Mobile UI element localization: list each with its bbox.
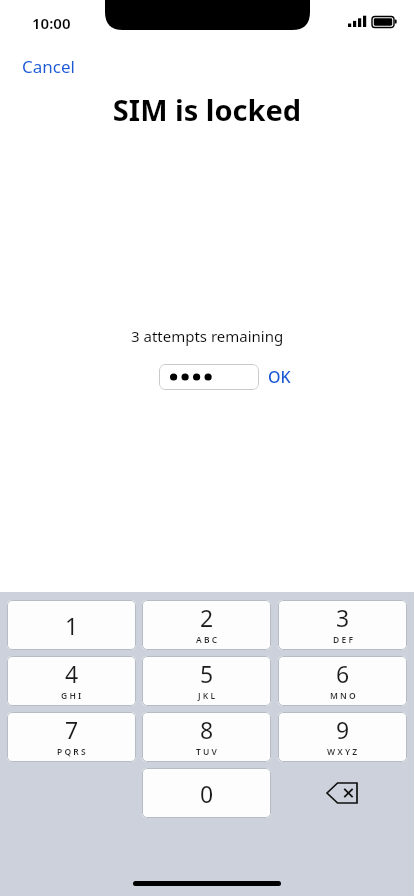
staticText: 6 xyxy=(336,658,350,689)
staticText: 1 xyxy=(65,610,79,641)
staticText: SIM is locked xyxy=(0,90,414,129)
staticText: J K L xyxy=(198,690,216,702)
button[interactable]: Cancel xyxy=(14,50,83,83)
staticText: M N O xyxy=(330,690,356,702)
button[interactable]: Delete xyxy=(278,768,407,818)
staticText: 8 xyxy=(200,714,214,745)
button[interactable]: 0 xyxy=(142,768,271,818)
staticText: Cancel xyxy=(22,55,75,78)
staticText: 2 xyxy=(200,602,214,633)
staticText: 0 xyxy=(200,778,214,809)
staticText: 10:00 xyxy=(32,13,71,33)
staticText: D E F xyxy=(333,634,353,646)
button[interactable]: OK xyxy=(259,362,300,392)
button[interactable]: 1 xyxy=(7,600,136,650)
button[interactable]: 3 xyxy=(278,600,407,650)
staticText: G H I xyxy=(61,690,82,702)
staticText: 7 xyxy=(65,714,79,745)
staticText: 3 xyxy=(336,602,350,633)
button[interactable]: 4 xyxy=(7,656,136,706)
button[interactable]: 6 xyxy=(278,656,407,706)
button[interactable]: 9 xyxy=(278,712,407,762)
button[interactable]: 5 xyxy=(142,656,271,706)
staticText: W X Y Z xyxy=(327,746,358,758)
staticText: OK xyxy=(268,366,291,388)
staticText: P Q R S xyxy=(57,746,86,758)
staticText: A B C xyxy=(196,634,218,646)
staticText: 5 xyxy=(200,658,214,689)
button[interactable]: 7 xyxy=(7,712,136,762)
staticText: 4 xyxy=(65,658,79,689)
button[interactable]: 8 xyxy=(142,712,271,762)
button[interactable]: PIN entry field xyxy=(159,364,259,390)
button[interactable]: 2 xyxy=(142,600,271,650)
staticText: 9 xyxy=(336,714,350,745)
staticText: T U V xyxy=(196,746,217,758)
staticText: 3 attempts remaining xyxy=(131,326,284,346)
